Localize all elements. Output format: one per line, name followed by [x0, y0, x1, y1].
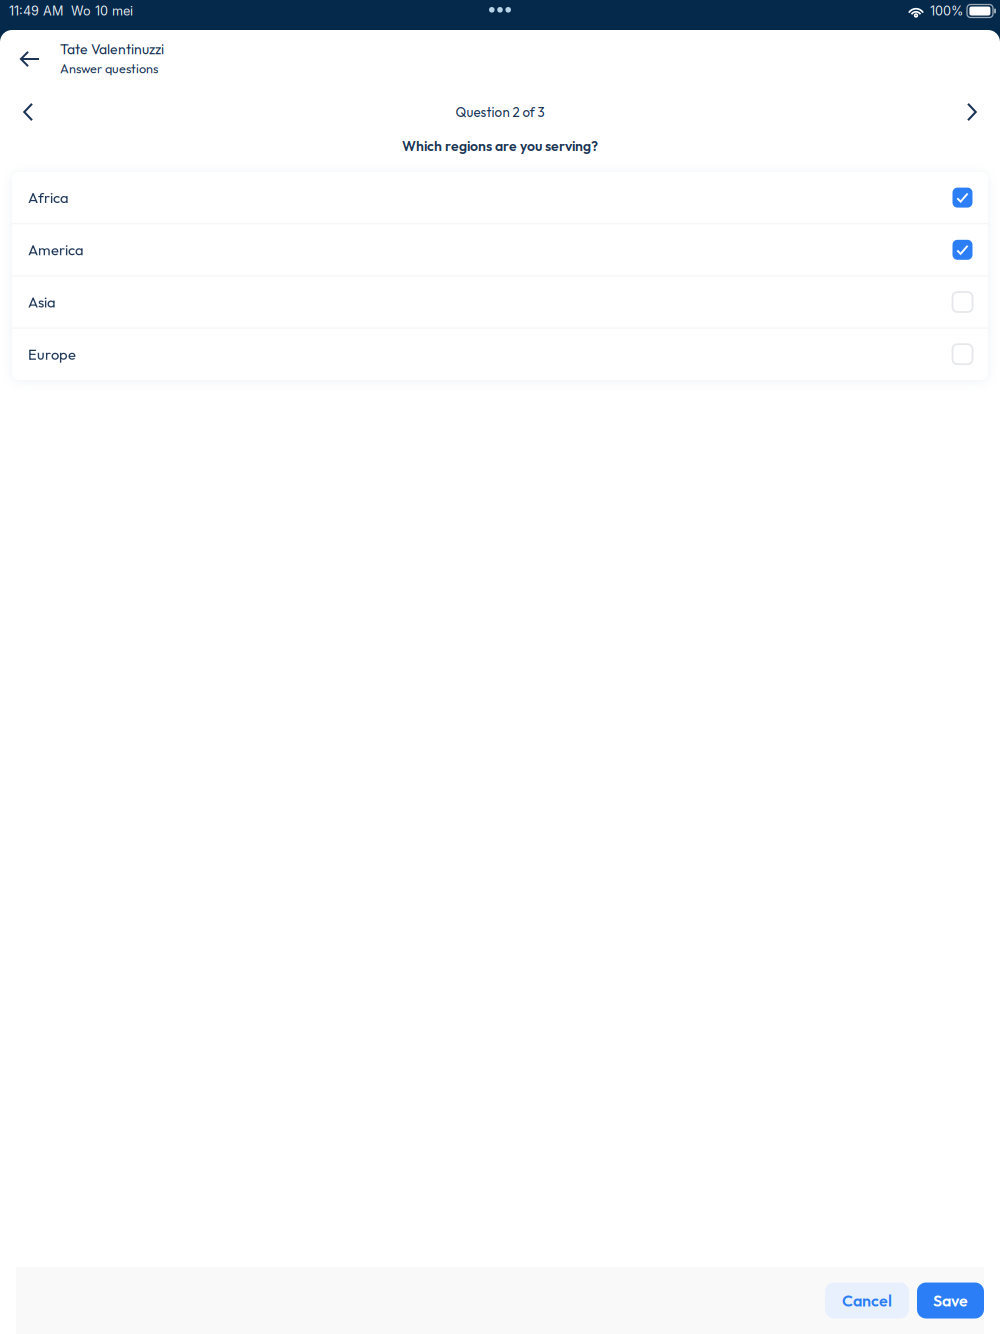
staticText: Africa — [28, 188, 69, 207]
button[interactable]: Europe — [12, 329, 988, 380]
staticText: Question 2 of 3 — [455, 104, 544, 120]
staticText: Asia — [28, 293, 56, 311]
staticText: 11:49 AM — [9, 3, 63, 19]
button[interactable]: Next question — [944, 88, 1000, 136]
staticText: Cancel — [842, 1290, 892, 1311]
staticText: Answer questions — [60, 60, 158, 76]
button[interactable]: Africa — [12, 172, 988, 223]
button[interactable]: America — [12, 224, 988, 275]
button[interactable]: Asia — [12, 276, 988, 328]
staticText: Which regions are you serving? — [402, 137, 598, 155]
staticText: Europe — [28, 345, 76, 363]
button[interactable]: Back — [0, 30, 60, 88]
button[interactable]: Save — [917, 1282, 984, 1318]
staticText: America — [28, 241, 84, 259]
staticText: 100% — [930, 3, 963, 19]
staticText: Save — [933, 1290, 968, 1311]
staticText: Tate Valentinuzzi — [60, 40, 164, 58]
button[interactable]: Previous question — [0, 88, 56, 136]
staticText: Wo 10 mei — [71, 3, 133, 19]
button[interactable]: Cancel — [825, 1282, 909, 1318]
